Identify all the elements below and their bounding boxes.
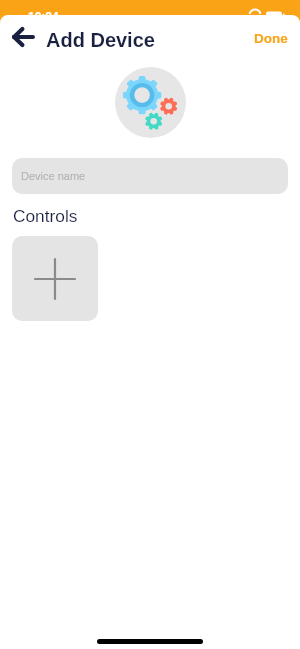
button[interactable]: Done <box>242 23 300 54</box>
button[interactable]: Device name <box>12 158 288 194</box>
staticText: Add Device <box>46 29 155 51</box>
staticText: Done <box>254 31 288 46</box>
button[interactable]: Add control <box>12 236 98 321</box>
staticText: Device name <box>21 170 86 182</box>
staticText: 10:24 <box>28 10 59 23</box>
button[interactable]: Back <box>4 17 43 57</box>
staticText: Controls <box>13 206 78 225</box>
